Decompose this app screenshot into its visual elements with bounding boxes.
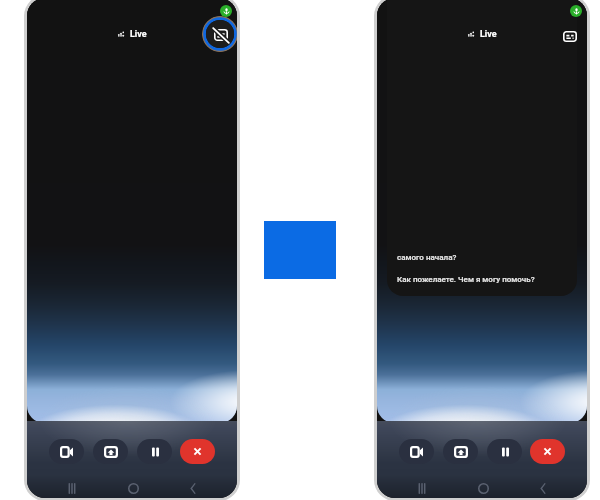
button[interactable]: Home (478, 483, 489, 494)
button[interactable]: Camera (399, 439, 434, 464)
staticText: самого начала? (397, 253, 457, 262)
staticText: Как пожелаете. Чем я могу помочь? (397, 275, 535, 284)
button[interactable]: Pause (137, 439, 172, 464)
staticText: Live (130, 29, 147, 40)
button[interactable]: End call (180, 439, 215, 464)
button[interactable]: Back (189, 483, 197, 494)
other: Microphone active (570, 5, 582, 17)
button[interactable]: End call (530, 439, 565, 464)
button[interactable]: Recents (67, 483, 77, 494)
staticText: Live (480, 29, 497, 40)
button[interactable]: Camera (49, 439, 84, 464)
button[interactable]: Turn off captions (560, 26, 580, 46)
button[interactable]: Pause (487, 439, 522, 464)
button[interactable]: Share screen (443, 439, 478, 464)
button[interactable]: Turn on captions (202, 16, 237, 52)
button[interactable]: Back (539, 483, 547, 494)
button[interactable]: Share screen (93, 439, 128, 464)
other: Microphone active (220, 5, 232, 17)
button[interactable]: Home (128, 483, 139, 494)
button[interactable]: Recents (417, 483, 427, 494)
